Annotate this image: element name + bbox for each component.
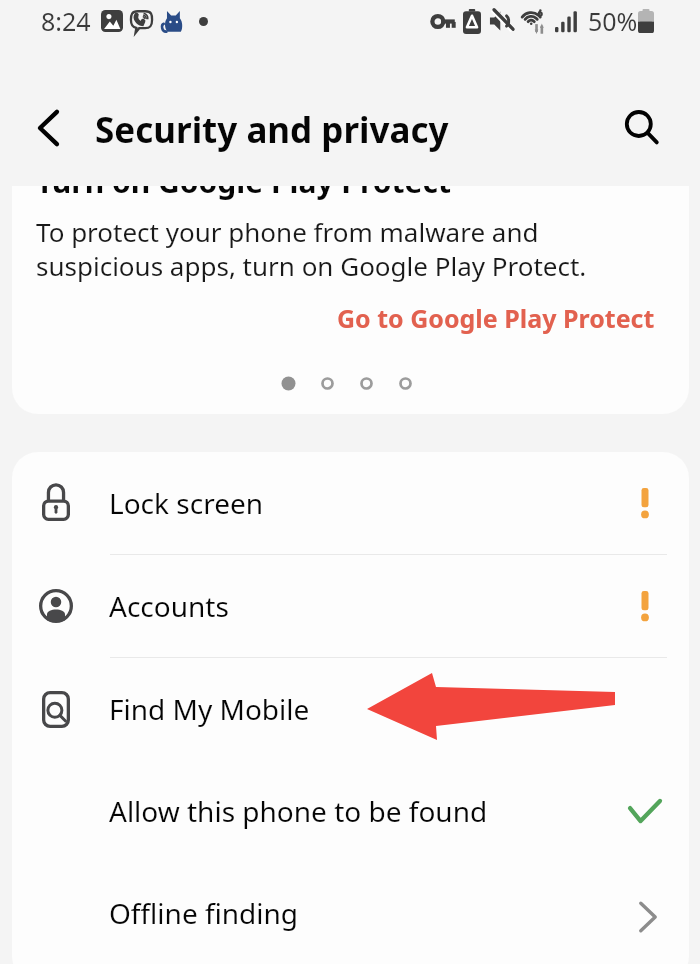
button[interactable]: Find My Mobile xyxy=(12,658,689,760)
button[interactable]: Back xyxy=(21,100,77,156)
staticText: Security and privacy xyxy=(95,106,449,154)
button[interactable]: Accounts xyxy=(12,555,689,657)
button[interactable]: Offline finding xyxy=(12,862,689,964)
staticText: 8:24 xyxy=(41,4,91,38)
button[interactable]: Allow this phone to be found xyxy=(12,760,689,862)
staticText: 50% xyxy=(588,4,638,38)
staticText: Find My Mobile xyxy=(109,690,310,728)
button[interactable]: Lock screen xyxy=(12,452,689,554)
button[interactable]: Go to Google Play Protect xyxy=(337,301,655,335)
staticText: Offline finding xyxy=(109,894,299,932)
staticText: Lock screen xyxy=(109,484,264,522)
staticText: Accounts xyxy=(109,587,229,625)
staticText: To protect your phone from malware and s… xyxy=(36,214,587,283)
staticText: Allow this phone to be found xyxy=(109,792,488,830)
button[interactable]: Turn on Google Play Protect xyxy=(12,186,689,414)
button[interactable]: Search xyxy=(614,100,670,156)
staticText: Turn on Google Play Protect xyxy=(36,186,451,202)
